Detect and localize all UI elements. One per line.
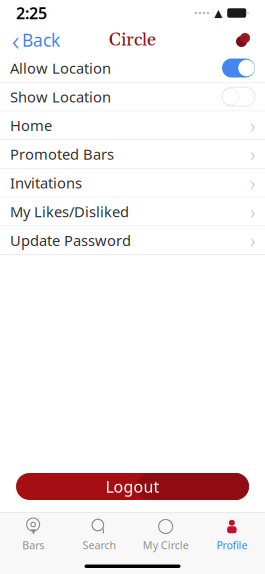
staticText: › <box>250 198 255 225</box>
button[interactable]: Show Location <box>0 83 265 111</box>
button[interactable]: Home <box>0 111 265 139</box>
staticText: Promoted Bars <box>10 144 114 164</box>
staticText: › <box>250 227 255 253</box>
button[interactable]: Messages <box>227 26 259 54</box>
staticText: › <box>250 112 255 139</box>
staticText: My Likes/Disliked <box>10 202 129 221</box>
button[interactable]: ▾ <box>0 513 66 552</box>
staticText: Profile <box>216 538 247 552</box>
staticText: Circle <box>109 28 156 52</box>
button[interactable]: My Likes/Disliked <box>0 197 265 225</box>
button[interactable]: Allow Location <box>0 54 265 82</box>
staticText: Invitations <box>10 173 82 193</box>
staticText: My Circle <box>143 538 189 552</box>
button[interactable]: Logout <box>0 473 265 500</box>
staticText: 2:25 <box>16 2 47 24</box>
staticText: ▲ <box>214 7 222 19</box>
button[interactable]: Profile <box>199 513 265 552</box>
staticText: Bars <box>22 538 44 552</box>
button[interactable]: Search <box>66 513 132 552</box>
staticText: ‹ <box>12 21 19 59</box>
staticText: Search <box>82 538 116 552</box>
staticText: Logout <box>105 476 159 497</box>
staticText: Show Location <box>10 87 111 106</box>
staticText: › <box>250 141 255 167</box>
staticText: ▾ <box>31 525 36 537</box>
staticText: Update Password <box>10 230 131 250</box>
staticText: › <box>250 169 255 196</box>
staticText: Allow Location <box>10 58 111 78</box>
staticText: Home <box>10 116 52 135</box>
button[interactable]: Promoted Bars <box>0 140 265 168</box>
button[interactable]: My Circle <box>132 513 199 552</box>
button[interactable]: Invitations <box>0 169 265 197</box>
button[interactable]: Update Password <box>0 226 265 254</box>
button[interactable]: ‹ <box>6 17 66 63</box>
staticText: Back <box>22 28 60 51</box>
